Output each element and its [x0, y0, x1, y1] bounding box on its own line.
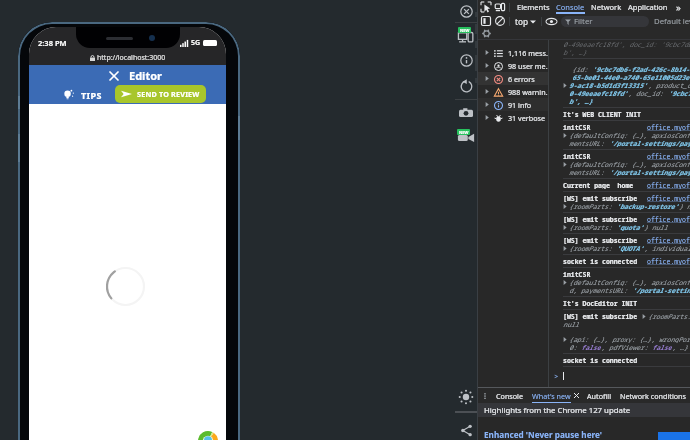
staticText: Enhanced 'Never pause here' [484, 429, 602, 440]
button[interactable]: Capture screenshot [457, 104, 475, 122]
staticText: d, paymentsURL: [569, 286, 632, 294]
staticText: Autofill [587, 391, 612, 401]
button[interactable]: Close DevTools [457, 2, 475, 20]
staticText: It's DocEditor INIT [563, 299, 638, 307]
staticText: SEND TO REVIEW [137, 89, 200, 99]
staticText: null [563, 320, 579, 328]
button[interactable]: Device toolbar [456, 25, 476, 45]
button[interactable]: 6 errors [478, 72, 548, 85]
button[interactable]: 98 user me… [478, 59, 548, 72]
staticText: [WS] emit subscribe [563, 236, 638, 244]
button[interactable]: Show console sidebar [481, 16, 491, 26]
staticText: false [581, 343, 601, 351]
staticText: > [554, 371, 559, 380]
staticText: {defaultConfig: {…}, apxiosConfig [569, 131, 690, 139]
button[interactable]: Inspect element [481, 2, 491, 12]
button[interactable]: What's new [528, 388, 583, 403]
button[interactable]: Elements [514, 0, 553, 14]
button[interactable]: More tabs [671, 0, 683, 14]
button[interactable]: Filter [561, 16, 649, 27]
button[interactable]: Share [457, 421, 475, 439]
staticText: 'quota' [616, 223, 644, 231]
staticText: top [515, 16, 528, 27]
staticText: , pdfViewer: [601, 343, 652, 351]
staticText: '9cbc7db6-f2ad-426c-8b14-5c4 [592, 65, 690, 73]
staticText: 0: [569, 343, 581, 351]
button[interactable]: Live expression [546, 16, 557, 27]
staticText: 0-49eeaefc18fd', doc_id: '9cbc7db [563, 40, 690, 48]
staticText: [WS] emit subscribe [563, 215, 638, 223]
staticText: {defaultConfig: {…}, apxiosConfig [569, 278, 690, 286]
staticText: 988 warnin… [508, 87, 548, 97]
button[interactable]: Appearance [457, 388, 475, 406]
staticText: Elements [517, 2, 550, 12]
button[interactable]: top [514, 16, 537, 27]
button[interactable]: Console settings [482, 29, 491, 38]
button[interactable]: More options [481, 392, 489, 400]
staticText: b', …} [569, 97, 593, 105]
button[interactable]: Clear console [495, 16, 505, 26]
button[interactable]: Info [457, 51, 475, 69]
button[interactable]: Console [492, 388, 528, 403]
button[interactable]: Autofill [583, 388, 616, 403]
button[interactable]: Close [107, 69, 121, 83]
staticText: 'QUOTA' [616, 244, 644, 252]
staticText: , product_of_ [648, 81, 690, 89]
staticText: 1,116 mess… [508, 48, 548, 58]
button[interactable]: TIPS [63, 89, 102, 101]
button[interactable]: Toggle device toolbar [495, 2, 505, 12]
staticText: '/portal-settings/payme [609, 139, 690, 147]
staticText: Filter [574, 16, 593, 27]
button[interactable]: 31 verbose [478, 111, 548, 124]
staticText: initCSR [563, 152, 591, 160]
staticText: NEW [460, 28, 470, 33]
staticText: http://localhost:3000 [97, 53, 166, 63]
staticText: {roomParts: [569, 223, 616, 231]
staticText: '9cbc7db [668, 89, 690, 97]
staticText: 2:38 PM [38, 38, 67, 48]
button[interactable]: Record [456, 126, 476, 146]
button[interactable]: Reload [457, 77, 475, 95]
staticText: Default levels [654, 16, 690, 27]
staticText: , individual [644, 244, 690, 252]
button[interactable]: Close tab [574, 393, 579, 398]
staticText: Highlights from the Chrome 127 update [484, 405, 631, 416]
staticText: office.myoffice [647, 257, 690, 265]
staticText: 91 info [508, 100, 532, 110]
staticText: {roomParts: [569, 244, 616, 252]
staticText: socket is connected [563, 356, 638, 364]
staticText: } nul [679, 202, 690, 210]
staticText: office.myoffice [647, 194, 690, 202]
staticText: Application [628, 2, 668, 12]
staticText: socket is connected [563, 257, 638, 265]
button[interactable]: SEND TO REVIEW [115, 85, 206, 103]
staticText: It's WEB CLIENT INIT [563, 110, 642, 118]
button[interactable]: Console [553, 0, 588, 14]
staticText: » [676, 1, 681, 14]
staticText: office.myoffice [647, 152, 690, 160]
button[interactable]: 91 info [478, 98, 548, 111]
staticText: office.myoffice [647, 181, 690, 189]
staticText: office.myoffice [647, 215, 690, 223]
staticText: '/portal-settings/payme [609, 168, 690, 176]
staticText: {id: [572, 65, 592, 73]
staticText: , …} [672, 343, 688, 351]
staticText: What's new [532, 391, 571, 401]
staticText: NEW [459, 130, 469, 135]
staticText: [WS] emit subscribe [563, 194, 638, 202]
staticText: 5G [191, 38, 201, 48]
staticText: initCSR [563, 123, 591, 131]
button[interactable]: 1,116 mess… [478, 46, 548, 59]
staticText: office.myoffice [647, 123, 690, 131]
staticText: , doc_id: [628, 89, 668, 97]
button[interactable]: Application [625, 0, 671, 14]
button[interactable]: Network conditions [616, 388, 690, 403]
staticText: 9-ac18-b5d1d3f13315' [569, 81, 648, 89]
staticText: 31 verbose [508, 113, 546, 123]
staticText: 98 user me… [508, 61, 548, 71]
button[interactable]: 988 warnin… [478, 85, 548, 98]
staticText: initCSR [563, 270, 591, 278]
staticText: {roomParts: [569, 202, 616, 210]
button[interactable]: Network [588, 0, 625, 14]
staticText: {defaultConfig: {…}, apxiosConfig [569, 160, 690, 168]
